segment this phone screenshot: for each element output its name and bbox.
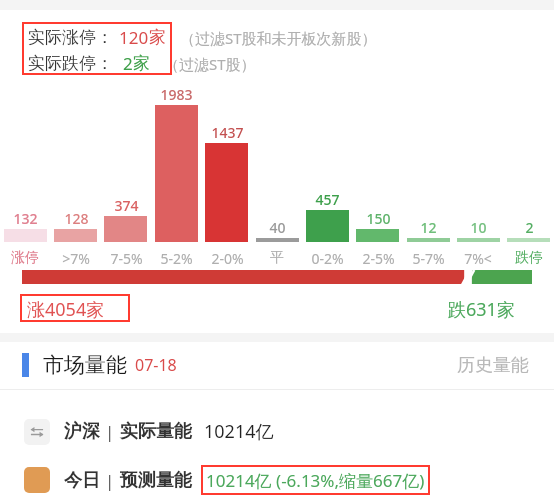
staticText: 132 [13,209,38,228]
staticText: 128 [64,209,89,228]
staticText: 10214亿 [204,419,274,444]
staticText: 5-7% [412,249,445,268]
staticText: 2-5% [362,249,395,268]
staticText: 40 [269,218,286,237]
staticText: 预测量能 [120,469,192,492]
button[interactable]: 今日预测量能 [0,457,554,503]
staticText: 涨4054家 [27,297,105,322]
staticText: 实际跌停： [28,53,113,74]
staticText: （过滤ST股和未开板次新股） [180,28,377,48]
staticText: 跌631家 [448,297,515,322]
other: 沪深 [24,419,50,445]
staticText: 457 [315,190,340,209]
staticText: 7-5% [110,249,143,268]
staticText: 沪深 [64,420,100,443]
staticText: 实际量能 [120,420,192,443]
staticText: 120 [119,26,149,49]
button[interactable]: 沪深 [0,409,554,454]
staticText: 家 [133,53,150,74]
staticText: 2 [525,218,534,237]
staticText: 家 [149,27,166,48]
staticText: 5-2% [160,249,193,268]
staticText: 2-0% [211,249,244,268]
staticText: 374 [114,196,139,215]
staticText: | [105,420,115,443]
staticText: 12 [420,218,437,237]
staticText: 0-2% [311,249,344,268]
staticText: >7% [62,249,90,268]
staticText: 150 [366,209,391,228]
staticText: 7%< [464,249,492,268]
staticText: 2 [123,52,133,75]
staticText: 10 [470,218,487,237]
staticText: 历史量能 [457,354,529,377]
staticText: 1437 [211,123,244,142]
staticText: 10214亿 (-6.13%,缩量667亿) [206,469,425,492]
staticText: 跌停 [515,249,543,267]
button[interactable]: 市场量能 [0,342,554,389]
staticText: 实际涨停： [28,27,113,48]
staticText: 1983 [160,85,193,104]
staticText: 市场量能 [43,352,127,378]
staticText: 今日 [64,469,100,492]
staticText: | [105,469,115,492]
staticText: 涨停 [11,249,39,267]
staticText: 平 [270,249,284,267]
staticText: 07-18 [135,354,177,376]
staticText: （过滤ST股） [164,54,256,74]
other: 今日预测量能 [24,467,50,493]
